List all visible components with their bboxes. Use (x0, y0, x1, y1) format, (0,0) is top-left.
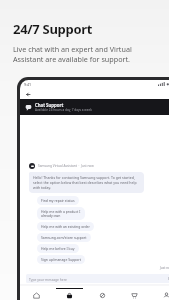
button[interactable]: Offers (86, 286, 118, 300)
other: Send (168, 276, 169, 281)
button[interactable]: Type your message here (26, 274, 169, 283)
button[interactable]: Sign up/manage Support (37, 255, 85, 264)
button[interactable]: Help me with a product I already own (37, 207, 85, 220)
staticText: Find my repair status (41, 198, 75, 203)
staticText: Samsung.com/store support (41, 235, 87, 240)
staticText: Samsung Virtual Assistant · Just now (38, 164, 94, 168)
button[interactable]: Chat Support (20, 99, 169, 115)
staticText: Sign up/manage Support (41, 257, 81, 262)
staticText: Help me with an existing order (41, 224, 90, 229)
staticText: Just now (160, 266, 169, 270)
staticText: 24/7 Support (13, 20, 93, 38)
staticText: Type your message here (29, 277, 67, 281)
staticText: Available 24 hours a day, 7 days a week (35, 108, 92, 112)
button[interactable]: Cart (118, 286, 150, 300)
staticText: 9:41 (24, 82, 32, 87)
staticText: Help me before I buy (41, 246, 75, 251)
staticText: Live chat with an expert and Virtual Ass… (13, 44, 132, 64)
staticText: Hello! Thanks for contacting Samsung sup… (33, 175, 140, 190)
button[interactable]: Samsung.com/store support (37, 233, 91, 242)
button[interactable]: Shop (53, 286, 86, 300)
button[interactable]: Back (24, 90, 32, 98)
button[interactable]: Help me before I buy (37, 244, 79, 253)
button[interactable]: Home (20, 286, 53, 300)
button[interactable]: Help me with an existing order (37, 222, 94, 231)
staticText: Help me with a product I already own (41, 209, 81, 218)
button[interactable]: Find my repair status (37, 196, 79, 205)
button[interactable]: Account (150, 286, 169, 300)
staticText: Chat Support (35, 102, 64, 108)
